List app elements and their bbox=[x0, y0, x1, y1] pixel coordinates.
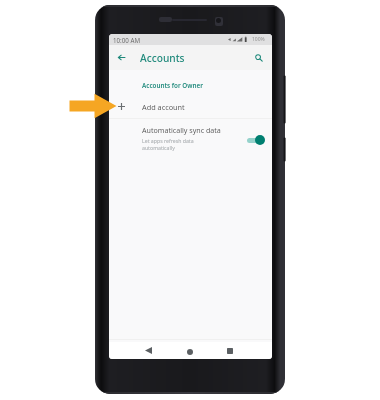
staticText: Accounts bbox=[140, 51, 185, 65]
staticText: Automatically sync data bbox=[142, 125, 221, 135]
button[interactable]: Search bbox=[251, 50, 267, 66]
staticText: Accounts for Owner bbox=[142, 81, 203, 90]
button[interactable]: Recent apps bbox=[223, 344, 236, 357]
button[interactable]: Add account bbox=[109, 99, 272, 114]
staticText: Let apps refresh data automatically bbox=[142, 137, 194, 151]
button[interactable]: Back bbox=[142, 344, 155, 357]
button[interactable]: Automatically sync data bbox=[109, 119, 272, 158]
button[interactable]: Back bbox=[115, 51, 128, 64]
staticText: Add account bbox=[142, 102, 185, 112]
button[interactable]: Home bbox=[183, 345, 196, 358]
staticText: 10:00 AM bbox=[113, 36, 140, 44]
staticText: 100% bbox=[252, 36, 265, 43]
